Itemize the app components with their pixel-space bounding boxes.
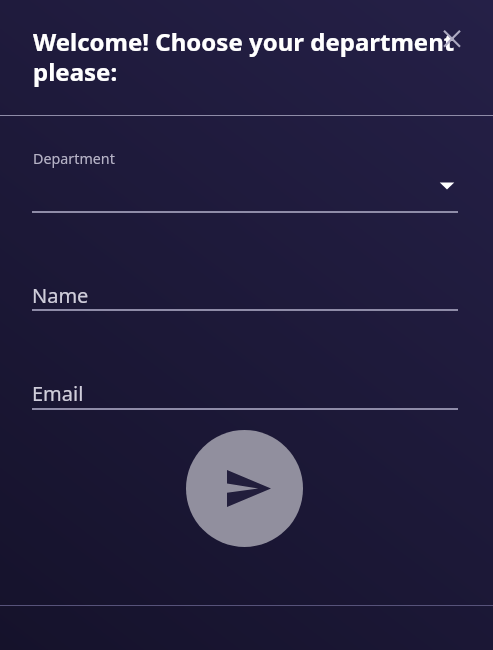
button[interactable]: Close: [438, 25, 466, 53]
button[interactable]: Name: [0, 262, 493, 312]
button[interactable]: Email: [0, 360, 493, 410]
staticText: Welcome! Choose your department please:: [33, 25, 465, 88]
staticText: Department: [33, 149, 115, 168]
button[interactable]: Send: [186, 430, 303, 547]
button[interactable]: Department: [0, 130, 493, 215]
staticText: Email: [32, 380, 84, 407]
staticText: Name: [32, 282, 89, 309]
